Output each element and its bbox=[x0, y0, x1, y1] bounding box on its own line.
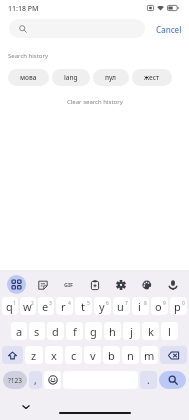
button[interactable]: u bbox=[113, 297, 130, 315]
button[interactable]: h bbox=[104, 322, 121, 340]
staticText: a bbox=[16, 324, 23, 339]
button[interactable]: . bbox=[140, 371, 157, 389]
staticText: ?123 bbox=[8, 376, 22, 385]
button[interactable]: Theme bbox=[137, 275, 156, 294]
staticText: 7 bbox=[125, 300, 128, 307]
button[interactable]: Hide keyboard bbox=[20, 401, 32, 413]
button[interactable]: пул bbox=[93, 69, 129, 86]
button[interactable]: m bbox=[141, 346, 158, 364]
button[interactable]: Search bbox=[159, 371, 186, 389]
staticText: o bbox=[155, 299, 162, 314]
button[interactable]: GIF bbox=[59, 275, 78, 294]
staticText: жест bbox=[144, 73, 160, 82]
button[interactable]: d bbox=[47, 322, 64, 340]
button[interactable]: Stickers bbox=[33, 275, 52, 294]
staticText: e bbox=[42, 299, 49, 314]
staticText: w bbox=[23, 299, 32, 314]
button[interactable]: Voice input bbox=[163, 275, 182, 294]
staticText: b bbox=[108, 348, 115, 363]
staticText: d bbox=[52, 324, 59, 339]
button[interactable]: Shift bbox=[2, 346, 23, 364]
button[interactable]: s bbox=[29, 322, 45, 340]
button[interactable]: j bbox=[123, 322, 140, 340]
staticText: q bbox=[6, 299, 13, 314]
button[interactable]: a bbox=[11, 322, 27, 340]
button[interactable]: мова bbox=[8, 69, 49, 86]
staticText: m bbox=[144, 348, 155, 363]
button[interactable]: Backspace bbox=[160, 346, 187, 364]
staticText: x bbox=[51, 348, 57, 363]
staticText: f bbox=[73, 324, 77, 339]
button[interactable]: p bbox=[170, 297, 187, 315]
staticText: пул bbox=[105, 73, 117, 82]
button[interactable]: y bbox=[94, 297, 111, 315]
staticText: мова bbox=[20, 73, 37, 82]
staticText: 9 bbox=[163, 300, 166, 307]
button[interactable]: l bbox=[161, 322, 178, 340]
staticText: Clear search history bbox=[67, 98, 123, 106]
staticText: y bbox=[99, 299, 105, 314]
staticText: p bbox=[174, 299, 181, 314]
staticText: g bbox=[90, 324, 97, 339]
staticText: n bbox=[127, 348, 134, 363]
button[interactable]: z bbox=[25, 346, 43, 364]
button[interactable]: Apps bbox=[7, 275, 26, 294]
staticText: 2 bbox=[31, 300, 34, 307]
staticText: j bbox=[130, 324, 133, 339]
staticText: 5 bbox=[87, 300, 90, 307]
staticText: Cancel bbox=[156, 24, 182, 35]
staticText: r bbox=[61, 299, 66, 314]
button[interactable]: Settings bbox=[111, 275, 130, 294]
button[interactable]: , bbox=[29, 371, 42, 389]
staticText: i bbox=[138, 299, 141, 314]
button[interactable]: c bbox=[65, 346, 82, 364]
staticText: z bbox=[31, 348, 37, 363]
button[interactable]: Emoji bbox=[44, 371, 61, 389]
staticText: 1 bbox=[13, 300, 16, 307]
button[interactable]: q bbox=[2, 297, 18, 315]
staticText: s bbox=[34, 324, 40, 339]
staticText: c bbox=[71, 348, 77, 363]
button[interactable]: i bbox=[132, 297, 149, 315]
staticText: v bbox=[90, 348, 96, 363]
button[interactable]: f bbox=[66, 322, 83, 340]
button[interactable]: n bbox=[122, 346, 139, 364]
staticText: t bbox=[81, 299, 85, 314]
staticText: 8 bbox=[144, 300, 147, 307]
button[interactable]: b bbox=[103, 346, 120, 364]
staticText: h bbox=[109, 324, 116, 339]
staticText: . bbox=[147, 373, 150, 387]
button[interactable]: Clipboard bbox=[85, 275, 104, 294]
button[interactable]: t bbox=[75, 297, 92, 315]
button[interactable]: g bbox=[85, 322, 102, 340]
button[interactable]: Clear search history bbox=[61, 96, 129, 108]
button[interactable]: r bbox=[56, 297, 73, 315]
button[interactable] bbox=[9, 19, 145, 38]
button[interactable]: w bbox=[20, 297, 36, 315]
staticText: 4 bbox=[68, 300, 71, 307]
staticText: 11:18 PM bbox=[8, 4, 39, 14]
staticText: Search history bbox=[8, 52, 49, 60]
button[interactable]: Cancel bbox=[152, 21, 186, 38]
staticText: lang bbox=[64, 73, 78, 82]
button[interactable]: lang bbox=[52, 69, 90, 86]
button[interactable]: жест bbox=[132, 69, 172, 86]
button[interactable]: k bbox=[142, 322, 159, 340]
button[interactable]: x bbox=[45, 346, 63, 364]
staticText: 6 bbox=[106, 300, 109, 307]
staticText: k bbox=[148, 324, 154, 339]
staticText: 0 bbox=[182, 300, 185, 307]
staticText: , bbox=[34, 373, 37, 387]
staticText: u bbox=[117, 299, 124, 314]
staticText: l bbox=[168, 324, 171, 339]
staticText: GIF bbox=[64, 281, 74, 288]
button[interactable]: e bbox=[38, 297, 54, 315]
button[interactable]: v bbox=[84, 346, 101, 364]
button[interactable]: ?123 bbox=[3, 371, 27, 389]
staticText: 3 bbox=[49, 300, 52, 307]
button[interactable]: o bbox=[151, 297, 168, 315]
